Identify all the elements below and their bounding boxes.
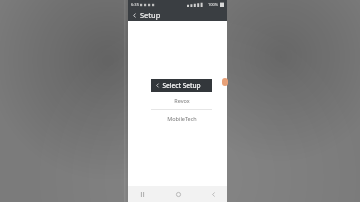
button[interactable]: Home: [172, 188, 184, 200]
staticText: MobileTech: [167, 115, 197, 122]
staticText: 6:35: [131, 2, 139, 7]
button[interactable]: Recent apps: [136, 188, 148, 200]
button[interactable]: Revox: [151, 92, 212, 109]
button[interactable]: Back: [151, 79, 212, 92]
button[interactable]: Back: [207, 188, 219, 200]
staticText: 100%: [208, 2, 219, 7]
button[interactable]: Navigate up: [131, 12, 138, 19]
staticText: Revox: [174, 97, 190, 104]
button[interactable]: Back: [155, 83, 160, 88]
button[interactable]: MobileTech: [151, 110, 212, 127]
staticText: Setup: [140, 10, 161, 20]
staticText: Select Setup: [162, 81, 201, 90]
